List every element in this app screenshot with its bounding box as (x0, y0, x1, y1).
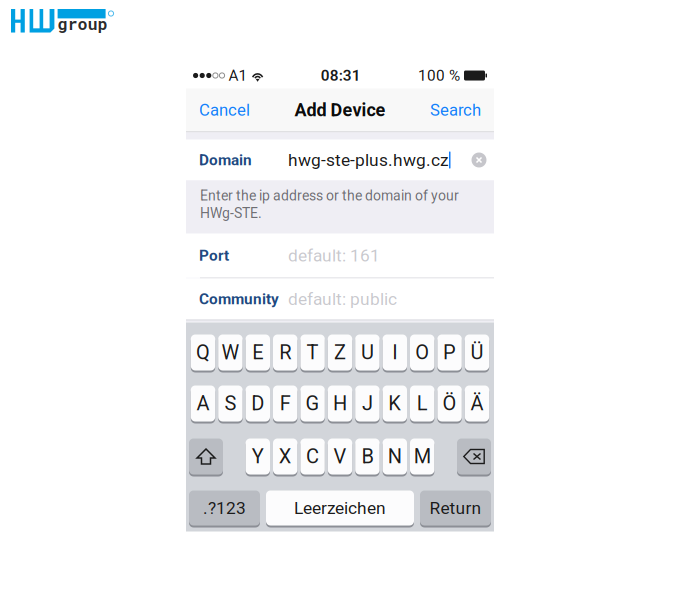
button[interactable]: Ä (465, 385, 489, 423)
button[interactable]: Delete (457, 438, 491, 476)
staticText: G (306, 392, 320, 415)
staticText: Community (199, 290, 279, 308)
staticText: X (279, 445, 292, 468)
staticText: I (392, 341, 397, 364)
staticText: H (333, 392, 347, 415)
staticText: Ä (470, 392, 483, 415)
button[interactable]: O (410, 334, 434, 372)
staticText: 08:31 (321, 66, 361, 84)
staticText: O (415, 341, 429, 364)
button[interactable]: B (355, 438, 380, 476)
staticText: U (361, 341, 374, 364)
staticText: Add Device (294, 99, 385, 121)
staticText: V (333, 445, 346, 468)
staticText: N (388, 445, 402, 468)
staticText: Q (196, 341, 210, 364)
button[interactable]: F (273, 385, 297, 423)
button[interactable]: X (273, 438, 297, 476)
staticText: Z (334, 341, 346, 364)
button[interactable]: G (300, 385, 325, 423)
staticText: C (306, 445, 319, 468)
staticText: J (362, 392, 373, 415)
button[interactable]: Search (398, 88, 494, 132)
button[interactable]: Y (246, 438, 270, 476)
staticText: P (443, 341, 456, 364)
staticText: F (280, 392, 291, 415)
staticText: D (251, 392, 264, 415)
button[interactable]: M (410, 438, 434, 476)
button[interactable]: T (300, 334, 325, 372)
button[interactable]: Leerzeichen (266, 490, 414, 527)
button[interactable]: Ö (437, 385, 462, 423)
staticText: default: public (288, 289, 397, 309)
staticText: Ö (443, 392, 457, 415)
staticText: HWg-STE. (200, 205, 262, 221)
button[interactable]: .?123 (189, 490, 260, 527)
button[interactable]: P (437, 334, 462, 372)
button[interactable]: Ü (465, 334, 489, 372)
staticText: E (252, 341, 263, 364)
button[interactable]: A (191, 385, 215, 423)
button[interactable]: Cancel (186, 88, 282, 132)
staticText: default: 161 (288, 245, 380, 266)
staticText: 100 % (418, 66, 460, 84)
button[interactable]: Clear text (466, 144, 492, 176)
staticText: A1 (229, 66, 248, 84)
button[interactable]: C (300, 438, 325, 476)
staticText: B (361, 445, 373, 468)
button[interactable]: W (218, 334, 243, 372)
staticText: Leerzeichen (294, 498, 386, 518)
staticText: L (417, 392, 428, 415)
staticText: Domain (199, 151, 252, 169)
button[interactable]: Return (420, 490, 491, 527)
button[interactable]: Z (328, 334, 352, 372)
button[interactable]: H (328, 385, 352, 423)
button[interactable]: Q (191, 334, 215, 372)
staticText: Enter the ip address or the domain of yo… (200, 187, 459, 204)
button[interactable]: K (383, 385, 407, 423)
staticText: W (221, 341, 239, 364)
button[interactable]: R (273, 334, 297, 372)
staticText: T (307, 341, 319, 364)
button[interactable]: Shift (189, 438, 223, 476)
button[interactable]: D (246, 385, 270, 423)
staticText: Return (429, 498, 481, 518)
staticText: group (57, 12, 107, 34)
button[interactable]: S (218, 385, 243, 423)
staticText: K (388, 392, 401, 415)
staticText: Search (430, 100, 481, 120)
staticText: M (414, 445, 431, 468)
staticText: S (224, 392, 236, 415)
staticText: hwg-ste-plus.hwg.cz (288, 150, 449, 170)
staticText: Port (199, 246, 229, 264)
button[interactable]: E (246, 334, 270, 372)
staticText: R (279, 341, 291, 364)
button[interactable]: V (328, 438, 352, 476)
button[interactable]: U (355, 334, 380, 372)
staticText: Cancel (199, 100, 250, 120)
button[interactable]: I (383, 334, 407, 372)
button[interactable]: L (410, 385, 434, 423)
staticText: .?123 (203, 498, 246, 518)
staticText: A (196, 392, 209, 415)
button[interactable]: J (355, 385, 380, 423)
staticText: Y (252, 445, 264, 468)
button[interactable]: N (383, 438, 407, 476)
staticText: Ü (470, 341, 483, 364)
